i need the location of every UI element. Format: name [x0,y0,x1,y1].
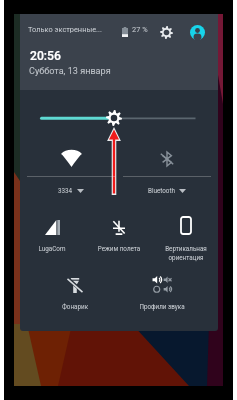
staticText: LugaCom [20,245,92,252]
button[interactable]: Режим полета [86,197,152,266]
staticText: Только экстренные... [28,25,102,34]
staticText: Суббота, 13 января [29,66,111,77]
staticText: 27 % [132,25,148,34]
staticText: 3334 [58,187,73,194]
button[interactable]: Bluetooth [119,136,218,197]
staticText: Вертикальная ориентация [146,245,218,261]
button[interactable]: LugaCom [20,197,85,266]
button[interactable]: Settings [156,22,176,42]
staticText: Bluetooth [148,187,175,194]
button[interactable]: Профили звука [119,266,218,331]
staticText: Профили звука [122,303,202,310]
button[interactable]: Фонарик [20,266,119,331]
staticText: 20:56 [30,49,61,63]
button[interactable]: Brightness [20,98,218,136]
staticText: Фонарик [35,303,115,310]
staticText: Режим полета [79,245,159,252]
button[interactable]: Вертикальная ориентация [153,197,218,266]
button[interactable]: User account [187,22,207,42]
button[interactable]: Wi-Fi 3334 [20,136,119,197]
